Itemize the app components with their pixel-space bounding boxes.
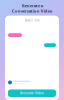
staticText: Sample chat xyxy=(24,19,39,22)
staticText: Generate a Conversation Video xyxy=(11,3,52,14)
staticText: Generate Video xyxy=(20,91,44,95)
button[interactable]: Generate Video xyxy=(8,89,56,97)
